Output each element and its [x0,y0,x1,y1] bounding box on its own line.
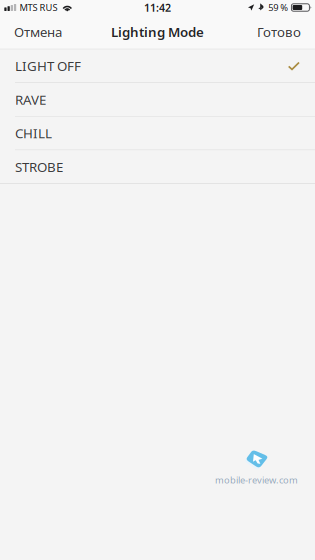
button[interactable]: Готово [243,15,315,49]
button[interactable]: Отмена [0,15,76,49]
button[interactable]: RAVE [0,83,315,116]
button[interactable]: STROBE [0,150,315,183]
staticText: Готово [257,23,301,41]
staticText: CHILL [15,124,52,142]
staticText: 11:42 [144,0,171,15]
staticText: 59 % [268,1,288,14]
button[interactable]: LIGHT OFF [0,49,315,82]
staticText: mobile-review.com [215,474,298,486]
staticText: STROBE [15,158,63,176]
staticText: MTS RUS [19,1,57,14]
staticText: Отмена [14,23,62,41]
staticText: RAVE [15,91,46,108]
staticText: LIGHT OFF [15,57,81,75]
button[interactable]: CHILL [0,117,315,150]
staticText: Lighting Mode [111,23,204,41]
